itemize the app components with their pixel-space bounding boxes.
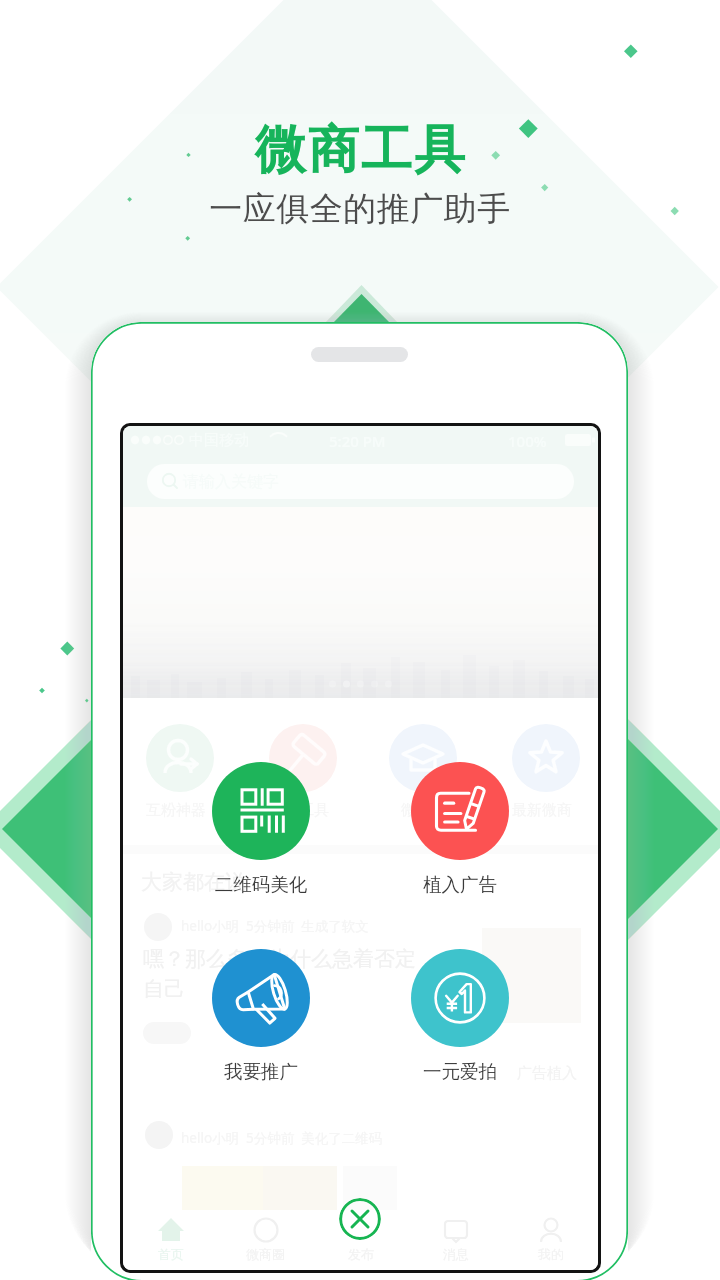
button[interactable]: 二维码美化 — [212, 762, 310, 860]
staticText: 发布 — [348, 1246, 374, 1262]
staticText: 二维码美化 — [191, 873, 331, 896]
staticText: 嘿？那么多人为什么急着否定 自己 — [143, 946, 416, 1003]
staticText: 拍卖工具 — [269, 801, 329, 820]
staticText: 我的 — [538, 1246, 564, 1262]
staticText: 一元爱拍 — [390, 1060, 530, 1083]
staticText: 一应俱全的推广助手 — [209, 188, 511, 230]
staticText: hello小明 5分钟前 生成了软文 — [181, 917, 369, 935]
button[interactable]: 一元爱拍 — [411, 949, 509, 1047]
staticText: hello小明 5分钟前 美化了二维码 — [181, 1129, 383, 1147]
button[interactable]: 发布 — [313, 1212, 408, 1270]
staticText: 微商工具 — [254, 118, 466, 182]
staticText: 植入广告 — [390, 873, 530, 896]
button[interactable]: 我的 — [503, 1212, 598, 1270]
button[interactable]: 我要推广 — [212, 949, 310, 1047]
button[interactable]: 微商圈 — [218, 1212, 313, 1270]
staticText: 首页 — [158, 1246, 184, 1262]
staticText: 消息 — [443, 1246, 469, 1262]
staticText: 广告植入 — [517, 1064, 577, 1083]
button[interactable]: 植入广告 — [411, 762, 509, 860]
button[interactable]: 首页 — [123, 1212, 218, 1270]
staticText: 微商圈 — [246, 1246, 285, 1262]
staticText: 互粉神器 — [146, 801, 206, 820]
button[interactable]: Close — [339, 1198, 381, 1240]
staticText: 微课 — [401, 801, 431, 820]
staticText: 大家都在说 — [141, 869, 246, 895]
staticText: 我要推广 — [191, 1060, 331, 1083]
staticText: 最新微商 — [512, 801, 572, 820]
